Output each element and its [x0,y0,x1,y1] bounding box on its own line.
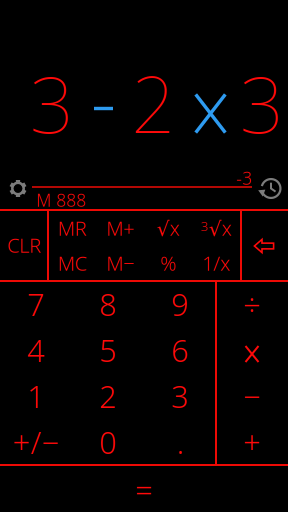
button[interactable]: 4 [0,327,72,373]
button[interactable]: 5 [72,327,144,373]
staticText: 3 [171,376,189,416]
staticText: 8 [99,284,117,324]
staticText: 0 [99,422,117,462]
button[interactable]: = [0,466,288,512]
button[interactable]: 2 [72,373,144,419]
staticText: % [160,250,176,276]
staticText: 2 [99,376,117,416]
button[interactable]: − [216,373,288,419]
button[interactable]: ÷ [216,281,288,327]
button[interactable]: . [144,419,216,465]
staticText: M+ [106,215,134,241]
staticText: 5 [99,330,117,370]
staticText: 1/x [202,250,230,276]
button[interactable]: M− [97,246,143,280]
button[interactable]: M+ [97,211,143,245]
button[interactable]: 1/x [193,246,239,280]
staticText: + [243,422,261,462]
staticText: MC [57,250,86,276]
staticText: 9 [171,284,189,324]
staticText: MR [57,215,86,241]
staticText: 3 [239,52,283,154]
button[interactable]: 8 [72,281,144,327]
staticText: 4 [27,330,45,370]
staticText: +/− [12,422,59,462]
button[interactable]: 7 [0,281,72,327]
staticText: M− [106,250,134,276]
staticText: 7 [27,284,45,324]
staticText: − [243,376,261,416]
button[interactable]: √x [145,211,191,245]
staticText: √x [156,215,179,241]
button[interactable]: +/− [0,419,72,465]
button[interactable]: 0 [72,419,144,465]
button[interactable]: CLR [1,211,47,279]
button[interactable]: History [260,178,281,199]
button[interactable]: Multiply [216,331,288,377]
staticText: 2 [131,52,175,154]
staticText: CLR [7,232,41,258]
button[interactable]: 3 [193,211,239,245]
button[interactable]: % [145,246,191,280]
button[interactable]: + [216,419,288,465]
staticText: ÷ [243,284,261,324]
button[interactable]: 9 [144,281,216,327]
staticText: -3 [236,166,252,189]
button[interactable]: 6 [144,327,216,373]
staticText: 3 [29,52,73,154]
staticText: M 888 [36,188,86,211]
button[interactable]: Backspace [253,238,274,253]
staticText: 6 [171,330,189,370]
staticText: 3 [200,217,208,235]
staticText: = [135,469,153,509]
staticText: 1 [27,376,45,416]
button[interactable]: MR [49,211,95,245]
button[interactable]: MC [49,246,95,280]
staticText: . [176,422,183,462]
button[interactable]: 1 [0,373,72,419]
button[interactable]: 3 [144,373,216,419]
button[interactable]: Settings [9,180,26,197]
staticText: √x [208,215,231,241]
